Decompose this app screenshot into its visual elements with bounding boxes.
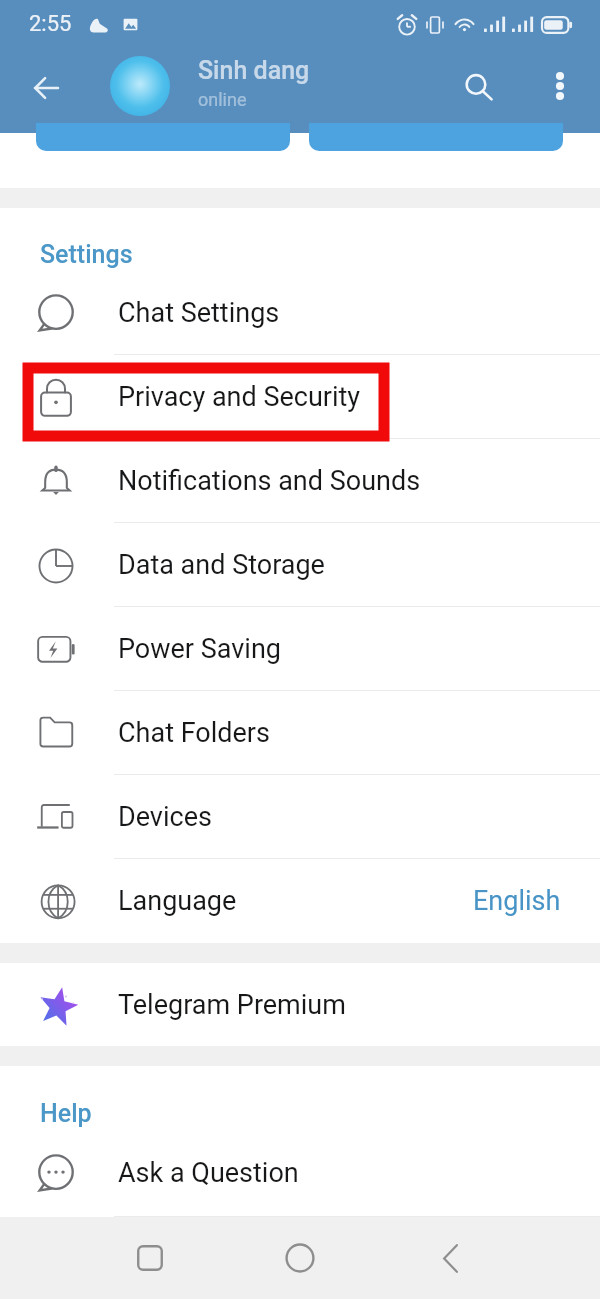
button[interactable]: Telegram Premium bbox=[0, 963, 600, 1046]
staticText: Devices bbox=[118, 801, 212, 833]
staticText: Data and Storage bbox=[118, 549, 325, 581]
staticText: Chat Settings bbox=[118, 297, 280, 329]
button[interactable]: Privacy and Security bbox=[0, 355, 600, 439]
staticText: Settings bbox=[40, 240, 133, 269]
button[interactable]: Data and Storage bbox=[0, 523, 600, 607]
button[interactable]: Power Saving bbox=[0, 607, 600, 691]
button[interactable]: Language bbox=[0, 859, 600, 943]
staticText: Privacy and Security bbox=[118, 381, 361, 413]
staticText: Language bbox=[118, 885, 237, 917]
button[interactable]: Search bbox=[445, 54, 513, 122]
button[interactable]: Ask a Question bbox=[0, 1130, 600, 1216]
staticText: Power Saving bbox=[118, 633, 281, 665]
button[interactable]: Notifications and Sounds bbox=[0, 439, 600, 523]
button[interactable]: Chat Folders bbox=[0, 691, 600, 775]
staticText: Notifications and Sounds bbox=[118, 465, 421, 497]
staticText: Chat Folders bbox=[118, 717, 270, 749]
staticText: Ask a Question bbox=[118, 1157, 299, 1189]
button[interactable]: More options bbox=[528, 54, 591, 117]
staticText: English bbox=[473, 885, 561, 917]
staticText: Sinh dang bbox=[198, 56, 310, 85]
staticText: Telegram Premium bbox=[118, 989, 346, 1021]
button[interactable]: Devices bbox=[0, 775, 600, 859]
button[interactable]: Chat Settings bbox=[0, 271, 600, 355]
staticText: Help bbox=[40, 1099, 92, 1128]
staticText: online bbox=[198, 89, 247, 110]
button[interactable]: Back bbox=[12, 54, 80, 122]
staticText: 2:55 bbox=[29, 11, 72, 37]
button[interactable]: Home bbox=[225, 1217, 375, 1299]
button[interactable]: Recent apps bbox=[75, 1217, 225, 1299]
button[interactable]: Back bbox=[375, 1217, 525, 1299]
